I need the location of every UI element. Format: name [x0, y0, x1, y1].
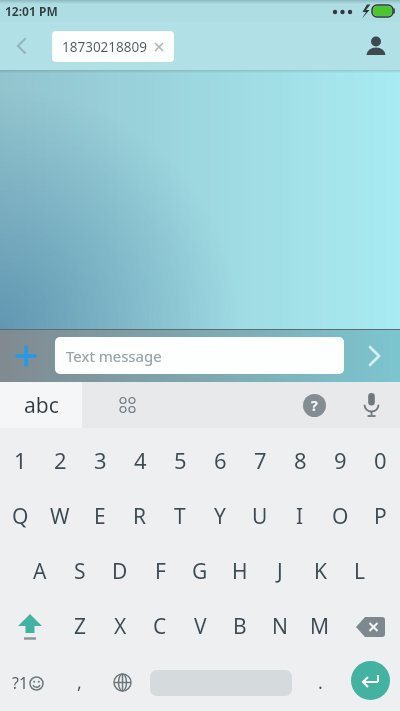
button[interactable]: H	[220, 544, 260, 599]
button[interactable]: .	[300, 654, 340, 711]
staticText: W	[50, 502, 70, 531]
button[interactable]: W	[40, 488, 80, 544]
staticText: .	[318, 670, 323, 695]
staticText: 18730218809	[62, 38, 147, 56]
button[interactable]: T	[160, 488, 200, 544]
staticText: 8	[294, 445, 307, 475]
button[interactable]: S	[60, 544, 100, 599]
button[interactable]: U	[240, 488, 280, 544]
staticText: T	[174, 502, 186, 531]
button[interactable]	[340, 654, 400, 711]
button[interactable]: ,	[56, 654, 102, 711]
staticText: B	[233, 612, 247, 641]
staticText: V	[194, 612, 207, 641]
button[interactable]: Z	[60, 599, 100, 654]
button[interactable]: 5	[160, 432, 200, 488]
staticText: U	[252, 502, 268, 531]
staticText: ?1	[12, 672, 29, 694]
button[interactable]: Text message	[55, 337, 344, 374]
button[interactable]: M	[300, 599, 340, 654]
button[interactable]: V	[180, 599, 220, 654]
button[interactable]: R	[120, 488, 160, 544]
staticText: 6	[214, 445, 227, 475]
button[interactable]: G	[180, 544, 220, 599]
button[interactable]: C	[140, 599, 180, 654]
staticText: P	[374, 502, 387, 531]
button[interactable]: Y	[200, 488, 240, 544]
staticText: 2	[54, 445, 67, 475]
button[interactable]: E	[80, 488, 120, 544]
staticText: ?	[311, 396, 318, 415]
staticText: K	[314, 557, 327, 586]
staticText: Z	[74, 612, 87, 641]
staticText: H	[232, 557, 248, 586]
staticText: 9	[334, 445, 347, 475]
button[interactable]: A	[20, 544, 60, 599]
staticText: Y	[214, 502, 226, 531]
button[interactable]: F	[140, 544, 180, 599]
button[interactable]: 1	[0, 432, 40, 488]
button[interactable]	[142, 654, 300, 711]
button[interactable]: B	[220, 599, 260, 654]
button[interactable]	[340, 599, 400, 654]
button[interactable]: Q	[0, 488, 40, 544]
button[interactable]: P	[360, 488, 400, 544]
staticText: 12:01 PM	[5, 3, 58, 19]
button[interactable]: abc	[0, 382, 82, 428]
staticText: J	[277, 557, 283, 586]
button[interactable]: 6	[200, 432, 240, 488]
button[interactable]: 9	[320, 432, 360, 488]
button[interactable]: O	[320, 488, 360, 544]
staticText: E	[94, 502, 106, 531]
button[interactable]: 7	[240, 432, 280, 488]
staticText: O	[332, 502, 349, 531]
button[interactable]: K	[300, 544, 340, 599]
button[interactable]	[348, 330, 400, 382]
button[interactable]	[352, 22, 400, 70]
staticText: D	[112, 557, 128, 586]
staticText: X	[114, 612, 127, 641]
button[interactable]: 2	[40, 432, 80, 488]
staticText: 7	[254, 445, 267, 475]
staticText: G	[192, 557, 208, 586]
staticText: 3	[94, 445, 107, 475]
staticText: F	[155, 557, 166, 586]
button[interactable]: 18730218809	[52, 31, 174, 62]
staticText: Q	[12, 502, 29, 531]
staticText: S	[74, 557, 86, 586]
button[interactable]	[0, 24, 44, 68]
button[interactable]	[102, 654, 142, 711]
staticText: 4	[134, 445, 147, 475]
button[interactable]	[0, 330, 52, 382]
button[interactable]: L	[340, 544, 380, 599]
button[interactable]: 4	[120, 432, 160, 488]
staticText: 0	[374, 445, 387, 475]
button[interactable]	[82, 382, 173, 428]
staticText: N	[272, 612, 288, 641]
staticText: C	[153, 612, 167, 641]
staticText: A	[33, 557, 47, 586]
button[interactable]: 3	[80, 432, 120, 488]
staticText: L	[354, 557, 366, 586]
button[interactable]: ?1	[0, 654, 56, 711]
button[interactable]	[342, 382, 400, 428]
button[interactable]: N	[260, 599, 300, 654]
button[interactable]: 0	[360, 432, 400, 488]
staticText: 5	[174, 445, 187, 475]
button[interactable]: J	[260, 544, 300, 599]
staticText: 1	[14, 445, 27, 475]
button[interactable]	[0, 599, 60, 654]
staticText: ,	[77, 670, 82, 695]
button[interactable]: 8	[280, 432, 320, 488]
button[interactable]: ?	[286, 382, 342, 428]
button[interactable]: I	[280, 488, 320, 544]
staticText: Text message	[66, 346, 162, 366]
button[interactable]: D	[100, 544, 140, 599]
staticText: R	[133, 502, 147, 531]
staticText: M	[310, 612, 330, 641]
staticText: abc	[24, 391, 59, 420]
button[interactable]: X	[100, 599, 140, 654]
staticText: I	[296, 502, 304, 531]
